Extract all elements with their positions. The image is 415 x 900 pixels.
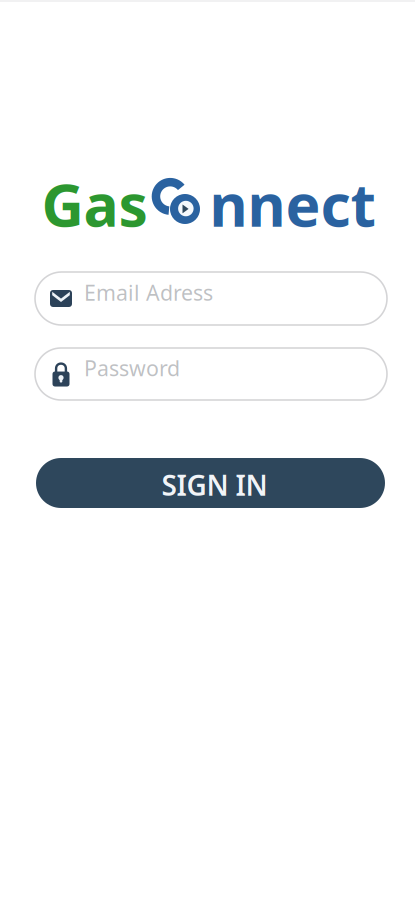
staticText: SIGN IN <box>161 466 267 504</box>
staticText: Gas <box>41 165 147 243</box>
staticText: Password <box>84 354 180 382</box>
staticText: nnect <box>209 165 375 243</box>
staticText: Email Adress <box>84 278 213 307</box>
button[interactable]: SIGN IN <box>36 458 385 508</box>
